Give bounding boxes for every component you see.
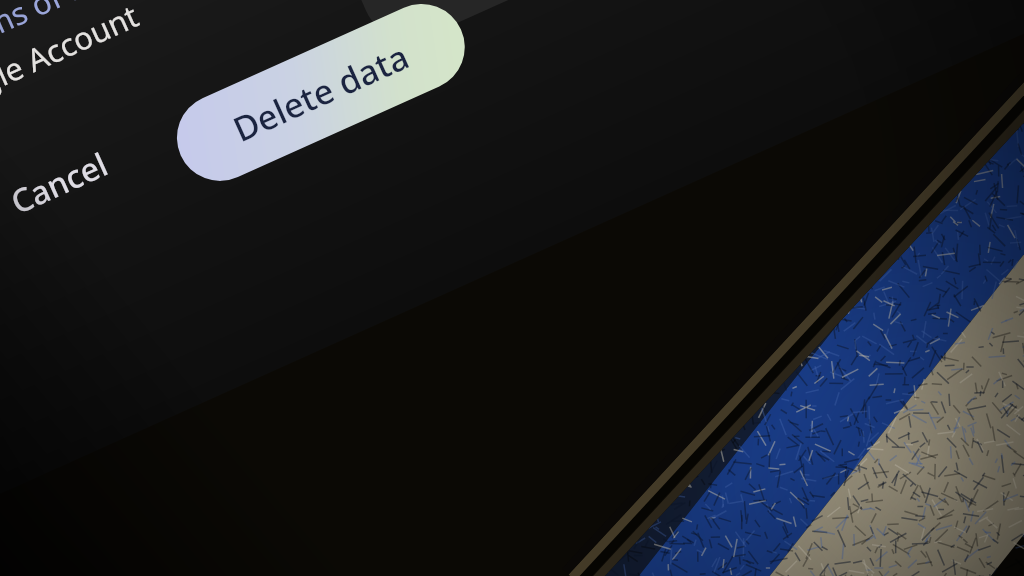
button[interactable]: Delete data (185, 230, 530, 505)
button[interactable]: Expand time range (476, 1, 824, 289)
button[interactable]: Cancel (51, 186, 199, 303)
